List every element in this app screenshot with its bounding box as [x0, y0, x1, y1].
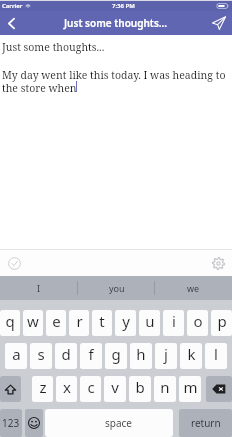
- staticText: j: [164, 344, 168, 364]
- staticText: m: [183, 377, 198, 397]
- staticText: c: [87, 377, 95, 397]
- staticText: return: [191, 416, 221, 430]
- button[interactable]: Shift: [0, 376, 21, 402]
- button[interactable]: s: [30, 343, 52, 369]
- button[interactable]: j: [155, 343, 177, 369]
- staticText: you: [109, 282, 125, 294]
- staticText: g: [111, 344, 121, 364]
- staticText: n: [160, 377, 170, 397]
- staticText: a: [12, 344, 21, 364]
- button[interactable]: h: [130, 343, 152, 369]
- button[interactable]: I: [0, 276, 78, 300]
- button[interactable]: k: [180, 343, 202, 369]
- button[interactable]: you: [78, 276, 155, 300]
- staticText: Just some thoughts...: [2, 40, 105, 54]
- button[interactable]: r: [69, 310, 89, 336]
- button[interactable]: Mark complete: [5, 254, 23, 272]
- staticText: w: [27, 311, 39, 331]
- button[interactable]: e: [46, 310, 66, 336]
- button[interactable]: v: [104, 376, 126, 402]
- button[interactable]: u: [139, 310, 160, 336]
- staticText: d: [61, 344, 71, 364]
- button[interactable]: Backspace: [206, 376, 232, 402]
- staticText: e: [52, 311, 61, 331]
- button[interactable]: p: [211, 310, 232, 336]
- staticText: u: [145, 311, 155, 331]
- button[interactable]: x: [56, 376, 77, 402]
- staticText: p: [217, 311, 227, 331]
- staticText: x: [63, 377, 71, 397]
- button[interactable]: Send: [206, 11, 232, 35]
- staticText: s: [37, 344, 45, 364]
- button[interactable]: b: [129, 376, 151, 402]
- staticText: q: [5, 311, 15, 331]
- button[interactable]: a: [5, 343, 27, 369]
- button[interactable]: space: [45, 409, 173, 437]
- button[interactable]: f: [80, 343, 102, 369]
- staticText: v: [111, 377, 119, 397]
- button[interactable]: Settings: [209, 254, 227, 272]
- staticText: 7:36 PM: [112, 2, 135, 10]
- button[interactable]: c: [80, 376, 101, 402]
- staticText: Just some thoughts...: [64, 16, 168, 30]
- button[interactable]: i: [163, 310, 184, 336]
- staticText: y: [122, 311, 130, 331]
- staticText: h: [136, 344, 146, 364]
- button[interactable]: d: [55, 343, 77, 369]
- staticText: i: [172, 311, 176, 331]
- staticText: I: [37, 282, 41, 294]
- staticText: k: [187, 344, 196, 364]
- button[interactable]: 123: [0, 409, 22, 437]
- button[interactable]: w: [23, 310, 43, 336]
- staticText: My day went like this today. I was headi…: [2, 68, 229, 95]
- staticText: Carrier: [2, 2, 23, 10]
- staticText: z: [39, 377, 47, 397]
- staticText: 123: [2, 416, 20, 430]
- staticText: r: [76, 311, 83, 331]
- staticText: f: [88, 344, 94, 364]
- button[interactable]: return: [179, 409, 232, 437]
- button[interactable]: we: [155, 276, 232, 300]
- button[interactable]: l: [205, 343, 227, 369]
- staticText: space: [105, 416, 132, 430]
- button[interactable]: m: [179, 376, 201, 402]
- staticText: o: [193, 311, 203, 331]
- button[interactable]: t: [92, 310, 112, 336]
- button[interactable]: n: [154, 376, 176, 402]
- button[interactable]: y: [115, 310, 136, 336]
- button[interactable]: Back: [0, 11, 26, 35]
- button[interactable]: q: [0, 310, 20, 336]
- staticText: l: [214, 344, 218, 364]
- staticText: t: [99, 311, 105, 331]
- button[interactable]: Emoji: [25, 409, 43, 437]
- staticText: we: [187, 282, 200, 294]
- staticText: b: [135, 377, 145, 397]
- button[interactable]: g: [105, 343, 127, 369]
- button[interactable]: o: [187, 310, 208, 336]
- button[interactable]: z: [32, 376, 53, 402]
